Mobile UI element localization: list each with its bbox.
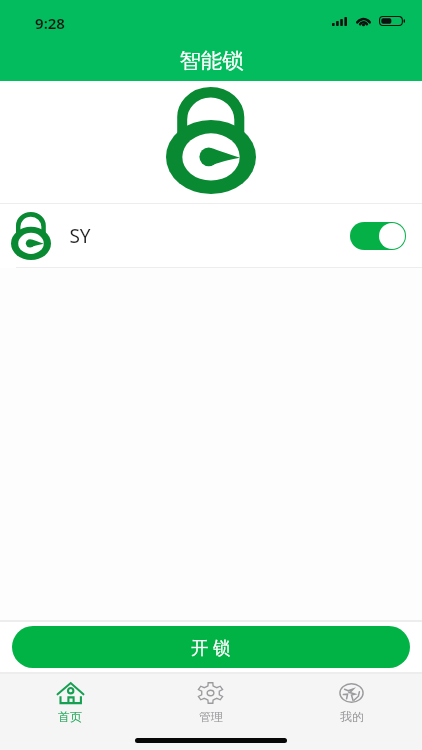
button[interactable]: 管理 (140, 674, 281, 728)
other: Battery (379, 16, 405, 26)
staticText: SY (69, 223, 91, 249)
staticText: 首页 (58, 709, 82, 724)
staticText: 9:28 (35, 13, 65, 33)
button[interactable]: 开 锁 (12, 626, 410, 668)
button[interactable]: Toggle lock (350, 222, 406, 250)
button[interactable]: 我的 (281, 674, 422, 728)
button[interactable]: 首页 (0, 674, 140, 728)
other: Wi-Fi (355, 16, 372, 26)
staticText: 管理 (199, 709, 223, 724)
staticText: 我的 (340, 709, 364, 724)
staticText: 开 锁 (191, 635, 231, 659)
staticText: 智能锁 (179, 47, 244, 74)
other: Signal strength (332, 17, 347, 26)
button[interactable]: SY (0, 204, 422, 268)
